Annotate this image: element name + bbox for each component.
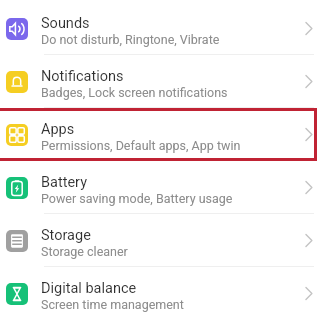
staticText: Storage <box>41 227 91 244</box>
staticText: Badges, Lock screen notifications <box>41 85 228 100</box>
staticText: Sounds <box>41 15 90 32</box>
button[interactable]: Digital balance <box>0 267 329 318</box>
button[interactable]: Sounds <box>0 2 329 55</box>
button[interactable]: Battery <box>0 161 329 214</box>
staticText: Battery <box>41 174 87 191</box>
staticText: Notifications <box>41 68 124 85</box>
staticText: Permissions, Default apps, App twin <box>41 138 241 153</box>
staticText: Do not disturb, Ringtone, Vibrate <box>41 32 220 47</box>
button[interactable]: Notifications <box>0 55 329 108</box>
button[interactable]: Storage <box>0 214 329 267</box>
staticText: Storage cleaner <box>41 244 128 259</box>
staticText: Apps <box>41 121 75 138</box>
staticText: Power saving mode, Battery usage <box>41 191 233 206</box>
staticText: Screen time management <box>41 297 184 312</box>
button[interactable]: Apps <box>0 108 329 161</box>
staticText: Digital balance <box>41 280 137 297</box>
